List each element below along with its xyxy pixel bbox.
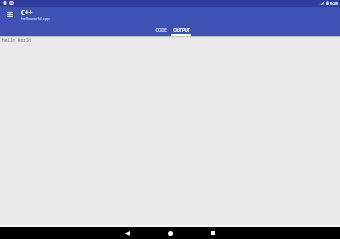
staticText: CODE [155, 27, 167, 33]
button[interactable]: Recent apps [201, 227, 225, 239]
button[interactable]: Open navigation menu [4, 8, 16, 20]
button[interactable]: CODE [151, 23, 171, 36]
staticText: C++ [21, 8, 33, 17]
button[interactable]: Home [158, 227, 182, 239]
staticText: Hello World [2, 37, 31, 43]
staticText: 9:28 [330, 1, 338, 6]
button[interactable]: OUTPUT [171, 23, 191, 36]
staticText: OUTPUT [173, 27, 190, 33]
button[interactable]: Back [115, 227, 139, 239]
staticText: helloworld.cpp [21, 16, 50, 22]
